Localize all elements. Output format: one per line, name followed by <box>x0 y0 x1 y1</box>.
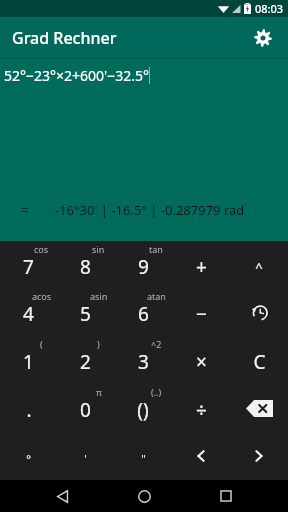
staticText: × <box>196 349 207 375</box>
button[interactable]: Home <box>124 480 164 512</box>
staticText: 3 <box>138 349 149 375</box>
staticText: 5 <box>80 301 91 327</box>
staticText: ) <box>97 338 100 350</box>
staticText: () <box>137 397 149 423</box>
staticText: − <box>196 301 207 327</box>
staticText: asin <box>90 290 108 302</box>
button[interactable]: + <box>172 241 230 288</box>
staticText: 4 <box>23 301 34 327</box>
button[interactable]: ' <box>57 432 114 480</box>
staticText: + <box>196 254 207 280</box>
staticText: ^2 <box>151 338 162 350</box>
button[interactable]: ) <box>57 336 114 384</box>
button[interactable]: cos <box>0 241 57 288</box>
staticText: 0 <box>80 397 91 423</box>
staticText: 2 <box>80 349 91 375</box>
button[interactable]: ^2 <box>114 336 172 384</box>
button[interactable]: . <box>0 384 57 432</box>
staticText: sin <box>92 243 105 255</box>
staticText: 6 <box>138 301 149 327</box>
button[interactable]: asin <box>57 288 114 336</box>
button[interactable]: π <box>57 384 114 432</box>
staticText: ÷ <box>196 397 207 423</box>
button[interactable]: backspace <box>230 384 288 432</box>
button[interactable]: tan <box>114 241 172 288</box>
button[interactable]: atan <box>114 288 172 336</box>
button[interactable]: (..) <box>114 384 172 432</box>
staticText: tan <box>149 243 163 255</box>
staticText: 52°−23°×2+600'−32.5° <box>4 66 149 85</box>
button[interactable]: × <box>172 336 230 384</box>
staticText: ( <box>40 338 43 350</box>
staticText: (..) <box>151 386 162 398</box>
button[interactable]: Recent apps <box>206 480 246 512</box>
staticText: cos <box>34 243 49 255</box>
button[interactable]: sin <box>57 241 114 288</box>
staticText: " <box>141 451 146 466</box>
staticText: 9 <box>138 254 149 280</box>
staticText: 8 <box>80 254 91 280</box>
button[interactable]: ÷ <box>172 384 230 432</box>
staticText: 7 <box>23 254 34 280</box>
button[interactable]: Settings <box>246 21 280 55</box>
staticText: 08:03 <box>255 1 284 16</box>
button[interactable]: − <box>172 288 230 336</box>
button[interactable]: acos <box>0 288 57 336</box>
staticText: atan <box>147 290 166 302</box>
staticText: ' <box>84 451 87 466</box>
button[interactable]: ^ <box>230 241 288 288</box>
button[interactable]: ° <box>0 432 57 480</box>
button[interactable]: next <box>230 432 288 480</box>
staticText: ° <box>26 451 31 466</box>
button[interactable]: " <box>114 432 172 480</box>
staticText: . <box>26 397 32 423</box>
staticText: = <box>21 201 29 219</box>
staticText: -16°30' | -16.5° | -0.287979 rad <box>55 201 245 219</box>
staticText: ^ <box>255 258 263 276</box>
staticText: C <box>253 349 266 375</box>
button[interactable]: history <box>230 288 288 336</box>
staticText: Grad Rechner <box>12 27 117 49</box>
staticText: 1 <box>23 349 34 375</box>
staticText: π <box>96 386 102 398</box>
staticText: acos <box>32 290 52 302</box>
button[interactable]: Back <box>42 480 82 512</box>
button[interactable]: prev <box>172 432 230 480</box>
button[interactable]: C <box>230 336 288 384</box>
button[interactable]: ( <box>0 336 57 384</box>
